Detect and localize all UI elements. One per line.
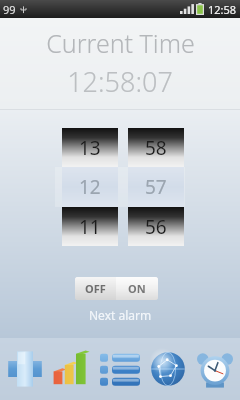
button[interactable]: Alarm clock [192,346,238,392]
staticText: 13 [79,135,101,161]
button[interactable]: OFF [75,277,158,300]
button[interactable]: 13 [62,128,118,246]
staticText: Next alarm [89,307,152,323]
staticText: 12:58 [208,2,237,17]
staticText: 12:58:07 [67,63,173,100]
button[interactable]: List [97,346,143,392]
button[interactable]: Statistics [49,346,95,392]
button[interactable]: Browser [145,346,191,392]
button[interactable]: Add [2,346,48,392]
staticText: 11 [79,214,101,240]
staticText: OFF [85,281,106,296]
staticText: 58 [145,135,167,161]
staticText: 99 [3,2,16,17]
staticText: ON [128,281,146,296]
staticText: 12 [79,174,101,200]
staticText: 57 [145,174,167,200]
staticText: Current Time [46,26,195,60]
button[interactable]: 58 [128,128,184,246]
staticText: 56 [145,214,167,240]
